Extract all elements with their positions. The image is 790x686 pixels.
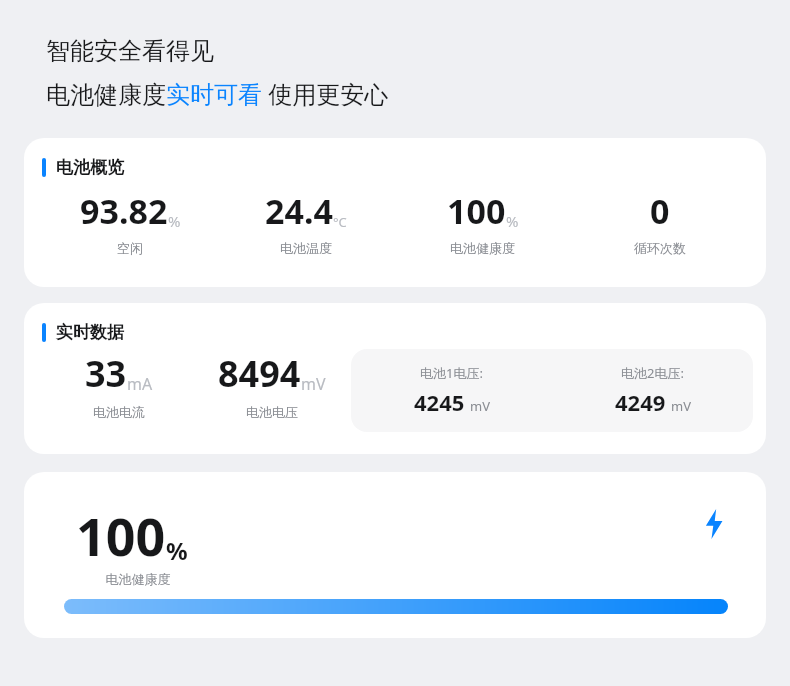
staticText: mV (301, 373, 326, 395)
staticText: 电池2电压: (621, 364, 684, 382)
staticText: 智能安全看得见 (46, 36, 214, 66)
staticText: 4245 (414, 387, 465, 417)
staticText: mV (671, 397, 691, 415)
staticText: 电池1电压: (420, 364, 483, 382)
staticText: % (166, 534, 188, 567)
staticText: 电池健康度实时可看 使用更安心 (46, 77, 389, 110)
staticText: 0 (650, 188, 670, 234)
button[interactable]: 电池1电压: (351, 349, 753, 432)
staticText: 电池电压 (246, 404, 298, 420)
staticText: 空闲 (117, 240, 143, 256)
staticText: °C (333, 213, 347, 231)
staticText: 循环次数 (634, 240, 686, 256)
staticText: 电池电流 (93, 404, 145, 420)
staticText: 8494 (218, 349, 301, 398)
button[interactable]: 电池概览 (24, 138, 766, 287)
staticText: 100 (447, 188, 506, 234)
staticText: 24.4 (265, 188, 333, 234)
staticText: 电池概览 (56, 157, 124, 178)
staticText: 实时数据 (56, 322, 124, 343)
staticText: 93.82 (80, 188, 168, 234)
staticText: mA (127, 373, 153, 395)
staticText: mV (470, 397, 490, 415)
staticText: 电池健康度 (450, 240, 515, 256)
button[interactable]: Charging (694, 504, 734, 544)
staticText: 100 (76, 500, 166, 571)
staticText: % (506, 211, 519, 231)
button[interactable]: 实时数据 (24, 303, 766, 454)
button[interactable]: 100 (24, 472, 766, 638)
staticText: 电池温度 (280, 240, 332, 256)
staticText: % (168, 211, 181, 231)
staticText: 4249 (615, 387, 666, 417)
staticText: 33 (85, 349, 127, 398)
staticText: 电池健康度 (76, 571, 200, 587)
